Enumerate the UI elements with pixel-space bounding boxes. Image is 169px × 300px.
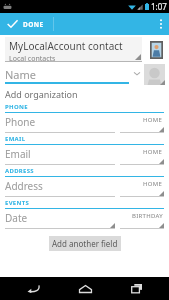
staticText: BIRTHDAY <box>132 212 163 220</box>
staticText: Local contacts <box>9 54 56 62</box>
button[interactable]: Date <box>5 211 115 229</box>
button[interactable]: Address <box>5 179 115 197</box>
button[interactable]: HOME <box>120 179 164 197</box>
staticText: Add organization <box>5 88 78 100</box>
button[interactable]: Back <box>15 277 51 300</box>
button[interactable]: Name <box>5 66 129 82</box>
button[interactable]: Add organization <box>0 85 169 103</box>
button[interactable]: Home <box>67 277 103 300</box>
button[interactable]: DONE <box>0 13 54 35</box>
staticText: EVENTS <box>5 199 30 207</box>
staticText: PHONE <box>5 103 28 111</box>
staticText: EMAIL <box>5 135 26 143</box>
staticText: DONE <box>23 20 44 29</box>
staticText: MyLocalAccount contact <box>9 39 123 53</box>
button[interactable]: More options <box>153 13 169 35</box>
staticText: ADDRESS <box>5 167 34 175</box>
staticText: Phone <box>5 115 36 129</box>
button[interactable]: Recent apps <box>118 277 154 300</box>
staticText: Date <box>5 211 28 225</box>
button[interactable]: HOME <box>120 147 164 165</box>
staticText: Address <box>5 179 43 193</box>
button[interactable]: Add photo <box>144 64 165 85</box>
button[interactable]: Phone <box>5 115 115 133</box>
staticText: Add another field <box>52 238 118 249</box>
staticText: HOME <box>143 180 163 188</box>
button[interactable]: Email <box>5 147 115 165</box>
button[interactable]: BIRTHDAY <box>120 211 164 229</box>
button[interactable]: HOME <box>120 115 164 133</box>
staticText: 1:07 <box>151 1 167 12</box>
button[interactable]: MyLocalAccount contact <box>5 37 142 62</box>
button[interactable]: Add another field <box>49 236 121 251</box>
staticText: Email <box>5 147 31 161</box>
staticText: HOME <box>143 116 163 124</box>
staticText: HOME <box>143 148 163 156</box>
button[interactable]: Expand name <box>132 64 142 82</box>
staticText: Name <box>5 67 37 82</box>
button[interactable]: Contact photo <box>147 37 165 62</box>
